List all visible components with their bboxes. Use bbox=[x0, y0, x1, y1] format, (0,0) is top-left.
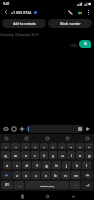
button[interactable]: Block number bbox=[48, 19, 92, 28]
staticText: b bbox=[54, 173, 57, 177]
button[interactable]: Emoji bbox=[3, 135, 10, 142]
staticText: Hi bbox=[84, 42, 87, 46]
button[interactable]: 7 bbox=[58, 143, 66, 149]
staticText: q bbox=[4, 153, 7, 157]
staticText: v bbox=[45, 173, 47, 177]
button[interactable]: 1 bbox=[1, 143, 10, 149]
button[interactable]: Recents bbox=[18, 192, 26, 200]
staticText: Block number bbox=[60, 22, 81, 26]
button[interactable]: z bbox=[13, 171, 21, 179]
button[interactable]: More bbox=[84, 135, 91, 142]
button[interactable]: , bbox=[14, 181, 24, 189]
staticText: d bbox=[25, 163, 28, 167]
staticText: . bbox=[75, 183, 76, 187]
button[interactable]: Camera bbox=[2, 125, 10, 133]
button[interactable]: !#1 bbox=[1, 181, 13, 189]
staticText: 5 bbox=[43, 145, 45, 148]
staticText: o bbox=[79, 153, 81, 157]
button[interactable]: 5 bbox=[40, 143, 48, 149]
button[interactable]: q bbox=[1, 151, 10, 159]
button[interactable]: . bbox=[70, 181, 80, 189]
staticText: 3 bbox=[25, 145, 27, 148]
button[interactable]: 0 bbox=[85, 143, 93, 149]
button[interactable]: Settings bbox=[64, 135, 71, 142]
staticText: 1 bbox=[5, 145, 7, 148]
staticText: k bbox=[76, 163, 78, 167]
button[interactable]: Back bbox=[69, 192, 77, 200]
button[interactable]: v bbox=[41, 171, 50, 179]
staticText: a bbox=[6, 163, 8, 167]
button[interactable]: Video call bbox=[75, 8, 84, 17]
button[interactable]: s bbox=[12, 161, 21, 169]
button[interactable]: h bbox=[52, 161, 61, 169]
button[interactable]: k bbox=[72, 161, 81, 169]
button[interactable]: g bbox=[42, 161, 51, 169]
button[interactable]: English (US) bbox=[25, 181, 69, 189]
button[interactable]: Add to contacts bbox=[2, 19, 46, 28]
button[interactable]: e bbox=[21, 151, 30, 159]
staticText: g bbox=[45, 163, 48, 167]
button[interactable]: w bbox=[11, 151, 20, 159]
button[interactable]: Back bbox=[2, 8, 10, 16]
button[interactable]: d bbox=[22, 161, 31, 169]
staticText: u bbox=[61, 153, 64, 157]
button[interactable]: b bbox=[51, 171, 60, 179]
staticText: Add to contacts bbox=[13, 22, 36, 26]
staticText: y bbox=[52, 153, 54, 157]
button[interactable]: t bbox=[40, 151, 48, 159]
staticText: t bbox=[43, 153, 45, 157]
button[interactable]: Voice input bbox=[44, 135, 51, 142]
button[interactable]: i bbox=[67, 151, 75, 159]
button[interactable]: Hi bbox=[79, 40, 91, 48]
button[interactable]: Add bbox=[18, 125, 26, 133]
staticText: English (US) bbox=[40, 184, 54, 187]
button[interactable]: 3 bbox=[21, 143, 30, 149]
staticText: e bbox=[25, 153, 27, 157]
staticText: , bbox=[19, 183, 20, 187]
button[interactable]: Send bbox=[84, 125, 92, 133]
staticText: m bbox=[74, 173, 78, 177]
button[interactable]: m bbox=[71, 171, 80, 179]
staticText: 9:41 bbox=[3, 1, 10, 6]
button[interactable]: Shift bbox=[1, 171, 12, 179]
button[interactable]: 6 bbox=[49, 143, 57, 149]
button[interactable]: Sticker bbox=[23, 135, 30, 142]
button[interactable]: 9 bbox=[76, 143, 84, 149]
staticText: l bbox=[86, 163, 87, 167]
staticText: 6 bbox=[52, 145, 54, 148]
staticText: h bbox=[55, 163, 58, 167]
staticText: Saturday, 24 January 2015 bbox=[0, 33, 39, 37]
button[interactable]: j bbox=[62, 161, 71, 169]
staticText: 9 bbox=[79, 145, 81, 148]
staticText: 8 bbox=[70, 145, 72, 148]
button[interactable]: f bbox=[32, 161, 41, 169]
button[interactable]: Home bbox=[43, 192, 51, 200]
button[interactable]: l bbox=[82, 161, 91, 169]
button[interactable]: c bbox=[31, 171, 40, 179]
staticText: 12:03 bbox=[70, 44, 77, 48]
staticText: i bbox=[71, 153, 72, 157]
button[interactable]: p bbox=[85, 151, 93, 159]
staticText: j bbox=[66, 163, 67, 167]
button[interactable]: o bbox=[76, 151, 84, 159]
button[interactable]: x bbox=[22, 171, 30, 179]
button[interactable]: Enter bbox=[81, 181, 93, 189]
button[interactable]: 4 bbox=[31, 143, 39, 149]
button[interactable]: 2 bbox=[11, 143, 20, 149]
button[interactable]: r bbox=[31, 151, 39, 159]
button[interactable]: Gallery bbox=[10, 125, 18, 133]
button[interactable]: y bbox=[49, 151, 57, 159]
button[interactable]: u bbox=[58, 151, 66, 159]
button[interactable]: a bbox=[3, 161, 11, 169]
staticText: p bbox=[88, 153, 91, 157]
staticText: c bbox=[35, 173, 37, 177]
button[interactable] bbox=[26, 125, 84, 133]
button[interactable]: Backspace bbox=[81, 171, 93, 179]
button[interactable]: 8 bbox=[67, 143, 75, 149]
staticText: r bbox=[34, 153, 36, 157]
button[interactable]: More options bbox=[84, 8, 92, 16]
staticText: 2 bbox=[15, 145, 17, 148]
button[interactable]: Call bbox=[66, 8, 75, 17]
button[interactable]: n bbox=[61, 171, 70, 179]
staticText: 4 bbox=[34, 145, 36, 148]
